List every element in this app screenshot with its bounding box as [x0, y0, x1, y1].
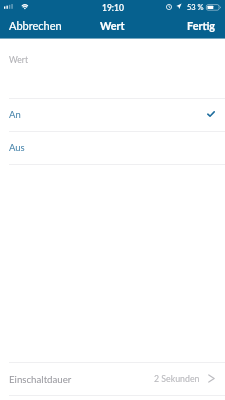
staticText: 53 % [187, 3, 204, 12]
other: Ausgewählt [207, 111, 215, 117]
staticText: Wert [100, 19, 125, 32]
staticText: An [9, 109, 21, 120]
staticText: Aus [9, 142, 25, 153]
staticText: Abbrechen [9, 19, 62, 32]
button[interactable]: An [0, 98, 225, 130]
staticText: 2 Sekunden [154, 373, 200, 384]
staticText: Einschaltdauer [9, 373, 72, 385]
staticText: Fertig [187, 19, 216, 32]
button[interactable]: Einschaltdauer [0, 363, 225, 394]
button[interactable]: Aus [0, 131, 225, 163]
staticText: 19:10 [102, 3, 124, 13]
button[interactable]: Fertig [181, 16, 225, 35]
button[interactable]: Abbrechen [0, 16, 68, 35]
staticText: Wert [9, 55, 28, 65]
